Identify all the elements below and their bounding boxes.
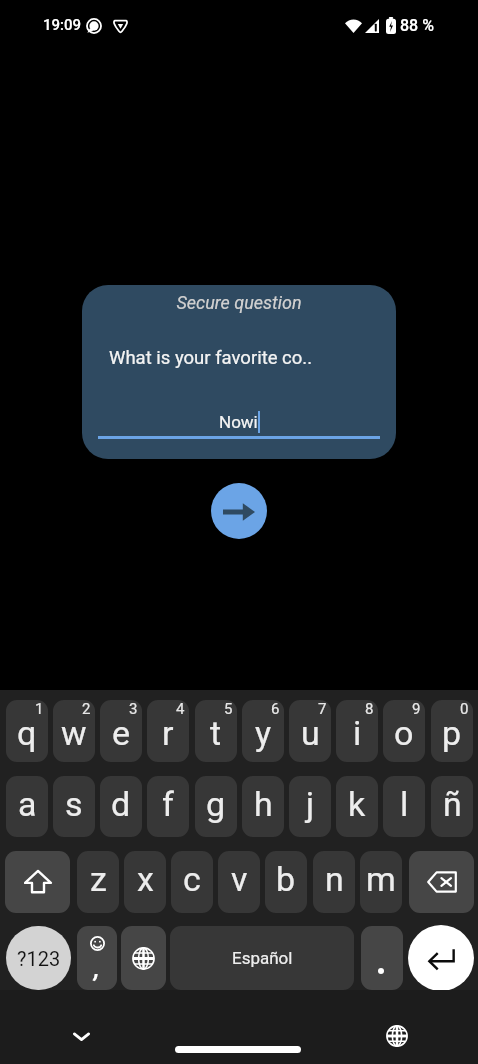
staticText: 3: [129, 700, 138, 718]
staticText: Español: [232, 948, 293, 968]
staticText: u: [301, 713, 320, 753]
button[interactable]: o: [383, 700, 425, 762]
button[interactable]: q: [6, 700, 48, 762]
staticText: Secure question: [82, 292, 396, 313]
staticText: 2: [82, 700, 91, 718]
button[interactable]: f: [147, 776, 189, 837]
button[interactable]: Period: [361, 926, 403, 990]
button[interactable]: Hide keyboard: [64, 1019, 98, 1053]
staticText: d: [111, 784, 131, 824]
staticText: Nowi: [219, 412, 258, 432]
button[interactable]: v: [218, 851, 260, 913]
staticText: x: [137, 859, 154, 899]
staticText: w: [61, 713, 87, 753]
staticText: i: [353, 713, 362, 753]
staticText: 4: [176, 700, 185, 718]
button[interactable]: Enter: [408, 925, 474, 991]
staticText: h: [254, 784, 273, 824]
button[interactable]: s: [53, 776, 95, 837]
staticText: 88 %: [400, 16, 434, 35]
staticText: 8: [365, 700, 374, 718]
staticText: 19:09: [43, 16, 82, 34]
staticText: r: [162, 713, 174, 753]
staticText: b: [276, 859, 296, 899]
button[interactable]: t: [195, 700, 237, 762]
staticText: 1: [35, 700, 44, 718]
staticText: c: [183, 859, 201, 899]
button[interactable]: Backspace: [409, 851, 474, 913]
button[interactable]: m: [360, 851, 402, 913]
staticText: What is your favorite co..: [109, 347, 313, 369]
staticText: j: [306, 784, 315, 824]
staticText: p: [442, 713, 462, 753]
button[interactable]: Emoji: [77, 926, 117, 990]
button[interactable]: p: [431, 700, 473, 762]
button[interactable]: j: [289, 776, 331, 837]
staticText: e: [112, 713, 131, 753]
button[interactable]: x: [124, 851, 166, 913]
button[interactable]: ñ: [431, 776, 473, 837]
staticText: 9: [412, 700, 421, 718]
button[interactable]: b: [265, 851, 307, 913]
staticText: k: [348, 784, 366, 824]
button[interactable]: Language: [121, 926, 166, 990]
staticText: n: [325, 859, 344, 899]
staticText: s: [65, 784, 83, 824]
button[interactable]: n: [313, 851, 355, 913]
staticText: o: [394, 713, 414, 753]
staticText: 7: [318, 700, 327, 718]
button[interactable]: Next: [211, 483, 267, 539]
button[interactable]: h: [242, 776, 284, 837]
staticText: q: [17, 713, 37, 753]
staticText: t: [210, 713, 222, 753]
staticText: ,: [94, 956, 100, 983]
staticText: 6: [271, 700, 280, 718]
button[interactable]: e: [100, 700, 142, 762]
button[interactable]: Shift: [5, 851, 70, 913]
button[interactable]: c: [171, 851, 213, 913]
staticText: a: [18, 784, 37, 824]
button[interactable]: Español: [170, 926, 354, 990]
button[interactable]: z: [77, 851, 119, 913]
staticText: 0: [460, 700, 469, 718]
button[interactable]: r: [147, 700, 189, 762]
staticText: g: [206, 784, 226, 824]
button[interactable]: i: [336, 700, 378, 762]
staticText: l: [400, 784, 409, 824]
staticText: f: [162, 784, 174, 824]
button[interactable]: ?123: [6, 926, 71, 990]
staticText: z: [90, 859, 107, 899]
button[interactable]: d: [100, 776, 142, 837]
staticText: m: [366, 859, 396, 899]
button[interactable]: w: [53, 700, 95, 762]
staticText: v: [231, 859, 248, 899]
button[interactable]: Change language: [380, 1019, 414, 1053]
staticText: ñ: [443, 784, 462, 824]
button[interactable]: u: [289, 700, 331, 762]
staticText: y: [255, 713, 272, 753]
button[interactable]: k: [336, 776, 378, 837]
button[interactable]: y: [242, 700, 284, 762]
button[interactable]: l: [383, 776, 425, 837]
button[interactable]: g: [195, 776, 237, 837]
staticText: 5: [224, 700, 233, 718]
staticText: ?123: [17, 947, 61, 970]
button[interactable]: a: [6, 776, 48, 837]
